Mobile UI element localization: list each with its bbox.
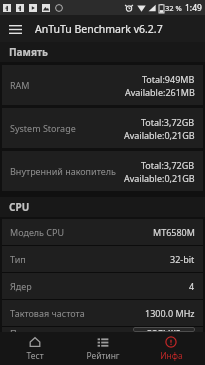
staticText: Инфа: [160, 350, 183, 362]
button[interactable]: Рейтинг: [69, 332, 137, 365]
button[interactable]: Тактовая частота: [2, 300, 203, 326]
staticText: AnTuTu Benchmark v6.2.7: [35, 22, 163, 36]
staticText: RAM: [10, 79, 121, 91]
staticText: Проц и ядро: [10, 327, 129, 332]
staticText: Total:949MB: [142, 73, 195, 85]
button[interactable]: БОЛЬШЕ: [133, 327, 195, 332]
staticText: 32 %: [165, 3, 182, 13]
staticText: CPU: [9, 200, 30, 214]
staticText: Тип: [10, 253, 166, 265]
staticText: 4: [189, 280, 195, 292]
staticText: System Storage: [10, 122, 120, 134]
button[interactable]: Внутренний накопитель: [2, 151, 203, 191]
staticText: Рейтинг: [86, 350, 120, 362]
button[interactable]: System Storage: [2, 108, 203, 148]
staticText: Внутренний накопитель: [10, 165, 120, 177]
button[interactable]: Тест: [0, 332, 69, 365]
button[interactable]: Open navigation drawer: [4, 18, 26, 40]
staticText: Available:0,21GB: [124, 129, 195, 141]
staticText: Ядер: [10, 280, 185, 292]
staticText: Тактовая частота: [10, 307, 141, 319]
button[interactable]: Инфа: [137, 332, 205, 365]
staticText: Тест: [26, 350, 44, 362]
button[interactable]: Модель CPU: [2, 219, 203, 245]
staticText: Available:0,21GB: [124, 172, 195, 184]
button[interactable]: RAM: [2, 65, 203, 105]
staticText: Память: [9, 45, 48, 59]
staticText: 1:49: [185, 2, 202, 14]
staticText: 32-bit: [170, 253, 195, 265]
staticText: Модель CPU: [10, 226, 149, 238]
staticText: БОЛЬШЕ: [147, 327, 181, 332]
button[interactable]: Ядер: [2, 273, 203, 299]
button[interactable]: Тип: [2, 246, 203, 272]
staticText: 1300.0 MHz: [145, 307, 195, 319]
staticText: Total:3,72GB: [141, 159, 195, 171]
staticText: MT6580M: [153, 226, 195, 238]
staticText: Total:3,72GB: [141, 116, 195, 128]
staticText: Available:261MB: [125, 86, 195, 98]
